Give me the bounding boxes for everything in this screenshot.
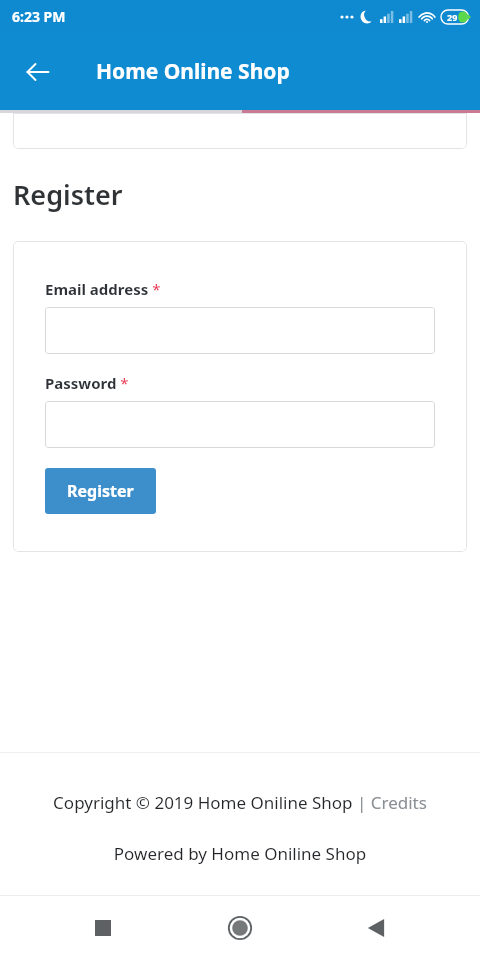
button[interactable]: Register [45,468,156,514]
button[interactable] [45,307,435,354]
button[interactable]: Recent apps [0,896,160,960]
button[interactable] [45,401,435,448]
staticText: 6:23 PM [12,7,66,26]
button[interactable]: Back [320,896,480,960]
button[interactable]: Back [14,48,62,96]
staticText: Powered by Home Oniline Shop [0,842,480,865]
staticText: Copyright © 2019 Home Oniline Shop | Cre… [0,791,480,814]
staticText: Register [67,480,134,502]
staticText: Password * [45,373,129,393]
staticText: Home Online Shop [96,57,290,86]
staticText: Email address * [45,279,161,299]
button[interactable]: Home [160,896,320,960]
staticText: Register [13,176,123,213]
staticText: 29 [447,11,458,23]
